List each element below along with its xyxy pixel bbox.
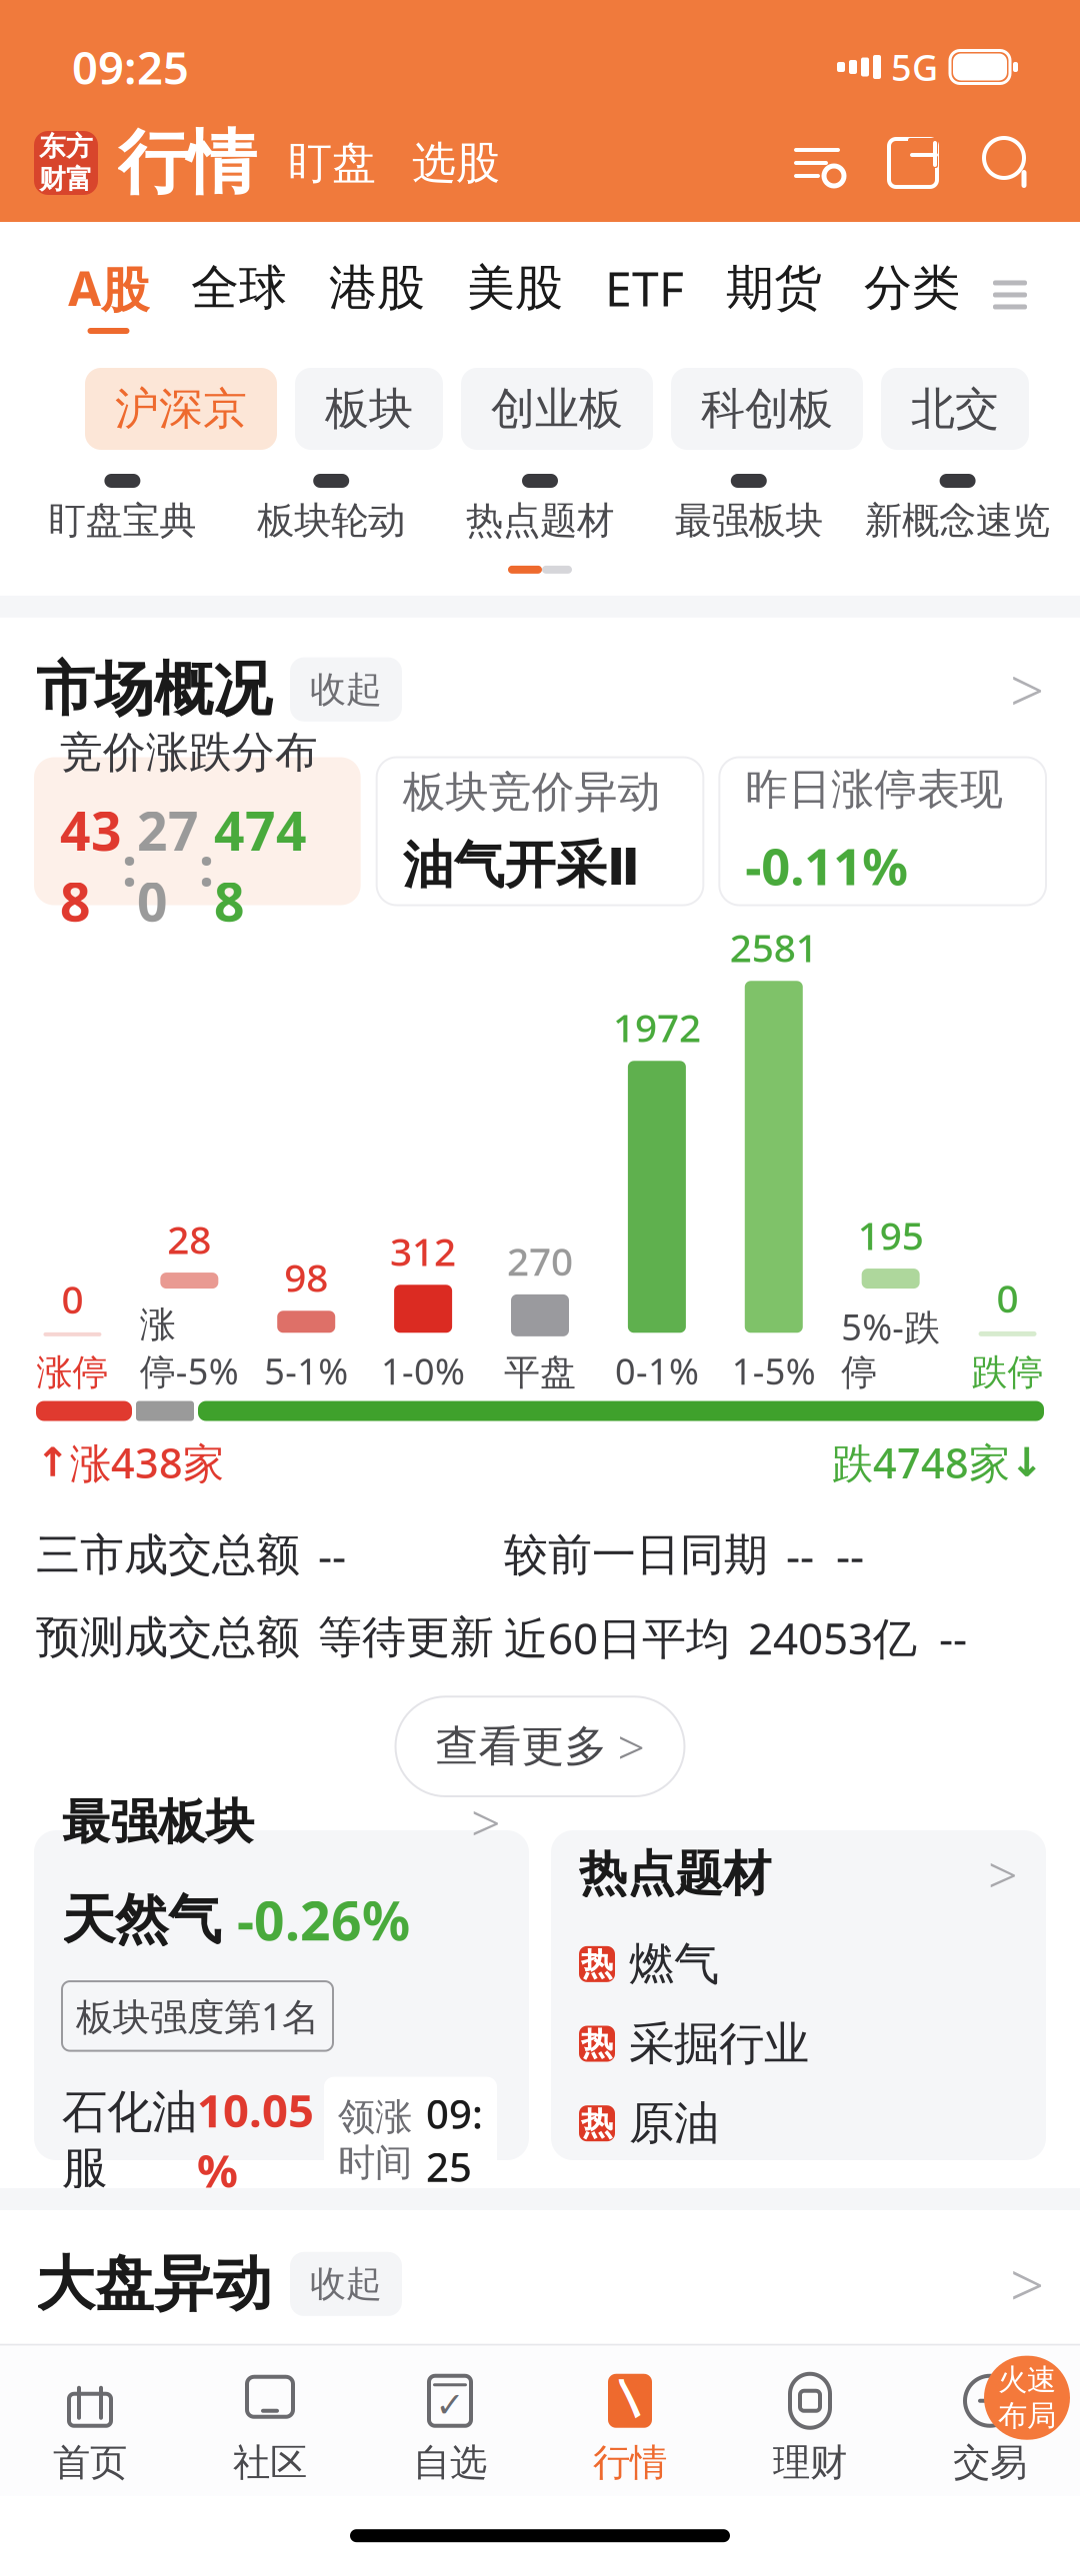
button[interactable]: 热点题材 — [436, 468, 644, 550]
staticText: ↑ — [36, 1440, 70, 1485]
staticText: A股 — [68, 256, 149, 320]
button[interactable]: 大盘异动 — [0, 2210, 1080, 2344]
staticText: 涨停 — [36, 1350, 108, 1395]
staticText: 270 — [137, 795, 199, 936]
button[interactable]: 创业板 — [461, 368, 653, 450]
staticText: 交易 — [953, 2440, 1027, 2486]
staticText: 2581 — [730, 922, 818, 973]
staticText: 热 — [581, 2024, 613, 2063]
staticText: > — [1010, 2244, 1044, 2324]
button[interactable]: 美股 — [446, 250, 584, 339]
staticText: 首页 — [53, 2440, 127, 2486]
button[interactable]: 最强板块 — [34, 1830, 529, 2160]
button[interactable]: A股 — [47, 248, 170, 342]
button[interactable]: 〵 — [540, 2368, 720, 2490]
staticText: 10.05% — [197, 2080, 314, 2200]
staticText: 0-1% — [615, 1347, 699, 1395]
staticText: 0 — [997, 1272, 1019, 1323]
staticText: 港股 — [329, 258, 425, 317]
button[interactable]: ✓ — [360, 2368, 540, 2490]
staticText: 原油 — [629, 2096, 719, 2151]
staticText: 5-1% — [264, 1347, 348, 1395]
staticText: > — [1010, 650, 1044, 729]
staticText: 09:25 — [426, 2087, 483, 2193]
staticText: 采掘行业 — [629, 2016, 809, 2072]
staticText: 北交 — [911, 382, 999, 436]
button[interactable]: 全部分类 — [981, 262, 1039, 327]
staticText: 板块 — [325, 382, 413, 436]
button[interactable]: 科创板 — [671, 368, 863, 450]
button[interactable]: 排序设置 — [780, 128, 854, 198]
staticText: 美股 — [467, 258, 563, 317]
button[interactable]: 分类 — [843, 250, 981, 339]
staticText: 期货 — [726, 258, 822, 317]
staticText: 新概念速览 — [865, 498, 1050, 544]
staticText: 行情 — [593, 2440, 667, 2486]
button[interactable]: 板块 — [295, 368, 443, 450]
button[interactable]: 昨日涨停表现 — [719, 757, 1046, 905]
button[interactable]: 市场概况 — [0, 618, 1080, 757]
staticText: ✓ — [435, 2385, 464, 2424]
staticText: 领涨时间 — [338, 2094, 412, 2186]
staticText: 涨438家 — [70, 1435, 224, 1490]
button[interactable]: 社区 — [180, 2368, 360, 2490]
button[interactable]: 北交 — [881, 368, 1029, 450]
staticText: 较前一日同期 — [504, 1528, 768, 1582]
staticText: 三市成交总额 — [36, 1528, 300, 1582]
staticText: 98 — [284, 1251, 328, 1303]
staticText: > — [617, 1715, 644, 1778]
button[interactable]: 首页 — [0, 2368, 180, 2490]
staticText: 平盘 — [504, 1350, 576, 1395]
button[interactable]: 分享 — [876, 126, 950, 200]
staticText: 最强板块 — [62, 1793, 254, 1851]
button[interactable]: 沪深京 — [85, 368, 277, 450]
staticText: 4748 — [214, 795, 307, 936]
staticText: 板块竞价异动 — [403, 766, 661, 818]
staticText: 石化油服 — [62, 2084, 197, 2196]
button[interactable]: 港股 — [308, 250, 446, 339]
button[interactable]: 期货 — [705, 250, 843, 339]
staticText: 分类 — [864, 258, 960, 317]
button[interactable]: 竞价涨跌分布 — [34, 757, 361, 905]
staticText: 自选 — [413, 2440, 487, 2486]
staticText: 竞价涨跌分布 — [60, 726, 318, 779]
staticText: : — [199, 830, 214, 901]
staticText: 收起 — [310, 667, 382, 712]
staticText: 195 — [858, 1209, 924, 1261]
staticText: > — [471, 1788, 501, 1857]
button[interactable]: 交易 — [900, 2352, 1080, 2506]
button[interactable]: 板块轮动 — [227, 468, 436, 550]
button[interactable]: 盯盘 — [274, 126, 390, 200]
button[interactable]: 理财 — [720, 2368, 900, 2490]
staticText: 东方 — [39, 130, 93, 163]
staticText: 0 — [61, 1273, 83, 1324]
button[interactable]: 盯盘宝典 — [18, 468, 227, 550]
button[interactable]: 最强板块 — [644, 468, 853, 550]
staticText: 选股 — [412, 136, 500, 190]
staticText: 近60日平均 — [504, 1608, 730, 1667]
staticText: 跌停 — [972, 1350, 1044, 1395]
staticText: : — [122, 830, 137, 901]
button[interactable]: 查看更多 — [395, 1697, 684, 1796]
staticText: 市场概况 — [36, 653, 272, 726]
staticText: 热点题材 — [579, 1844, 771, 1903]
button[interactable]: 选股 — [398, 126, 514, 200]
staticText: 盯盘 — [288, 136, 376, 190]
button[interactable]: 搜索 — [972, 126, 1046, 200]
staticText: 燃气 — [629, 1936, 719, 1992]
staticText: 油气开采Ⅱ — [403, 834, 640, 896]
button[interactable]: ETF — [584, 248, 705, 342]
staticText: 收起 — [310, 2262, 382, 2306]
staticText: 大盘异动 — [36, 2248, 272, 2320]
staticText: 天然气 — [62, 1887, 221, 1953]
staticText: 板块轮动 — [257, 498, 405, 544]
button[interactable]: 板块竞价异动 — [377, 757, 703, 905]
button[interactable]: 全球 — [170, 250, 308, 339]
staticText: ↓ — [1010, 1440, 1044, 1485]
button[interactable]: 新概念速览 — [853, 468, 1062, 550]
staticText: -0.26% — [237, 1884, 410, 1955]
staticText: 查看更多 — [435, 1720, 607, 1773]
staticText: ETF — [605, 256, 684, 320]
staticText: 涨停-5% — [140, 1303, 239, 1395]
button[interactable]: 热点题材 — [551, 1830, 1046, 2160]
